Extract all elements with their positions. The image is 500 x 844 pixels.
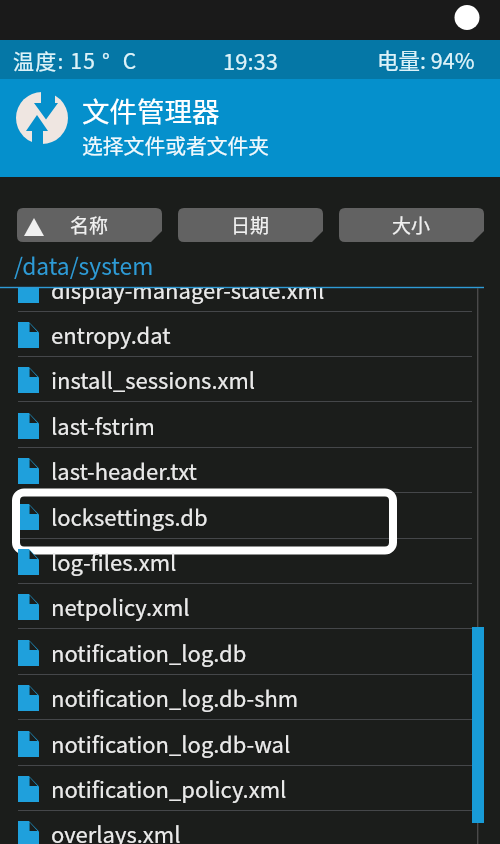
button[interactable]: locksettings.db — [0, 494, 500, 539]
staticText: 名称 — [70, 211, 109, 239]
staticText: overlays.xml — [51, 817, 181, 844]
staticText: install_sessions.xml — [51, 363, 256, 395]
staticText: 日期 — [231, 211, 270, 239]
staticText: locksettings.db — [51, 500, 208, 532]
staticText: 19:33 — [223, 44, 278, 76]
button[interactable]: 名称 — [17, 208, 162, 242]
staticText: last-header.txt — [51, 454, 197, 486]
staticText: notification_log.db — [51, 636, 247, 668]
button[interactable]: notification_log.db-wal — [0, 721, 500, 766]
button[interactable]: display-manager-state.xml — [0, 288, 500, 312]
staticText: 电量: 94% — [377, 44, 475, 75]
button[interactable]: last-header.txt — [0, 448, 500, 493]
button[interactable]: 日期 — [178, 208, 323, 242]
staticText: notification_policy.xml — [51, 772, 287, 804]
staticText: 文件管理器 — [82, 90, 220, 130]
button[interactable]: overlays.xml — [0, 811, 500, 844]
staticText: /data/system — [14, 249, 154, 282]
button[interactable]: install_sessions.xml — [0, 357, 500, 402]
staticText: last-fstrim — [51, 409, 155, 441]
button[interactable]: notification_policy.xml — [0, 766, 500, 811]
button[interactable]: last-fstrim — [0, 403, 500, 448]
staticText: netpolicy.xml — [51, 590, 190, 622]
staticText: log-files.xml — [51, 545, 177, 577]
button[interactable]: notification_log.db-shm — [0, 675, 500, 720]
button[interactable]: 大小 — [339, 208, 484, 242]
button[interactable]: log-files.xml — [0, 539, 500, 584]
staticText: notification_log.db-shm — [51, 681, 299, 713]
staticText: 大小 — [392, 211, 431, 239]
button[interactable]: netpolicy.xml — [0, 584, 500, 629]
staticText: notification_log.db-wal — [51, 727, 291, 759]
staticText: display-manager-state.xml — [51, 288, 325, 305]
button[interactable]: entropy.dat — [0, 312, 500, 357]
staticText: 选择文件或者文件夹 — [82, 130, 270, 160]
staticText: 温度: 15 ° C — [13, 45, 138, 75]
staticText: entropy.dat — [51, 318, 171, 350]
button[interactable]: notification_log.db — [0, 630, 500, 675]
